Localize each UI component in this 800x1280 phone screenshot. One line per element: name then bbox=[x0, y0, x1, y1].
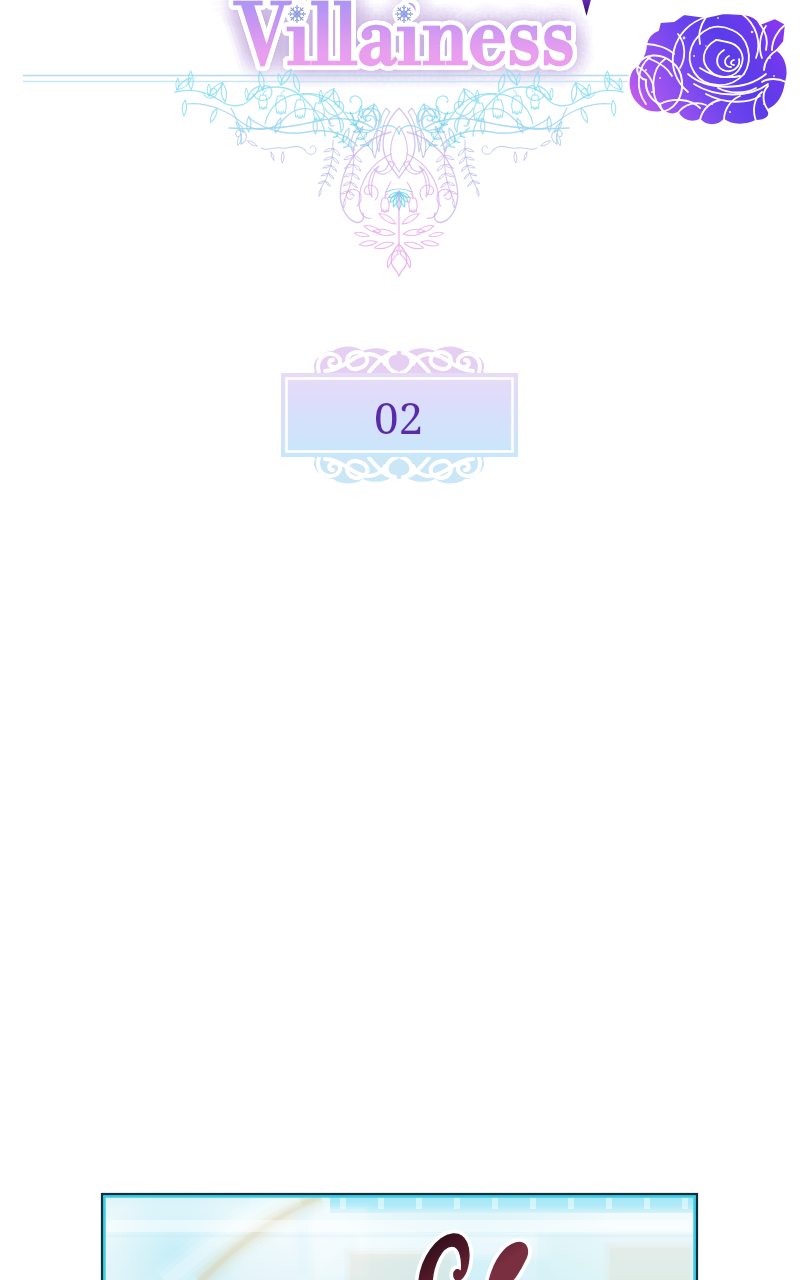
button[interactable]: Chapter 02 bbox=[281, 373, 518, 457]
button[interactable]: Villainess chapter 02 page, tap to show … bbox=[0, 0, 800, 1280]
button[interactable]: Comic panel bbox=[101, 1193, 698, 1280]
